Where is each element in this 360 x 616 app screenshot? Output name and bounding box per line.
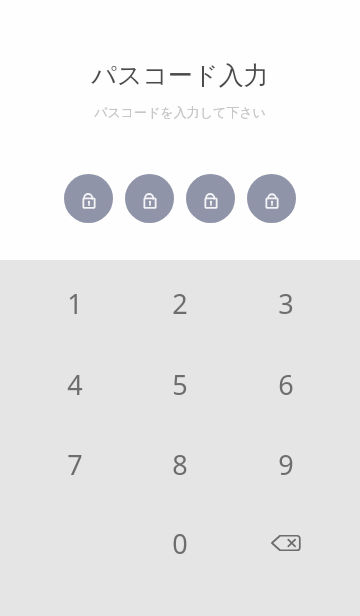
- staticText: 7: [67, 446, 83, 483]
- button[interactable]: 1: [22, 263, 128, 343]
- staticText: 3: [278, 285, 294, 322]
- staticText: 0: [172, 525, 188, 562]
- other: Passcode slot 1 empty: [64, 174, 113, 223]
- other: Passcode slot 3 empty: [186, 174, 235, 223]
- button[interactable]: 7: [22, 424, 128, 504]
- button[interactable]: 5: [127, 344, 233, 424]
- button[interactable]: 2: [127, 263, 233, 343]
- button[interactable]: Delete: [233, 503, 339, 583]
- staticText: パスコード入力: [91, 60, 269, 91]
- button[interactable]: 4: [22, 344, 128, 424]
- button[interactable]: 6: [233, 344, 339, 424]
- button[interactable]: 8: [127, 424, 233, 504]
- staticText: 1: [67, 285, 83, 322]
- button[interactable]: 3: [233, 263, 339, 343]
- staticText: 9: [278, 446, 294, 483]
- staticText: パスコードを入力して下さい: [94, 104, 266, 120]
- other: Passcode slot 4 entered: [247, 174, 296, 223]
- staticText: 4: [67, 366, 83, 403]
- other: Passcode slot 2 empty: [125, 174, 174, 223]
- staticText: 6: [278, 366, 294, 403]
- staticText: 2: [172, 285, 188, 322]
- button[interactable]: 9: [233, 424, 339, 504]
- staticText: 8: [172, 446, 188, 483]
- button[interactable]: 0: [127, 503, 233, 583]
- staticText: 5: [172, 366, 188, 403]
